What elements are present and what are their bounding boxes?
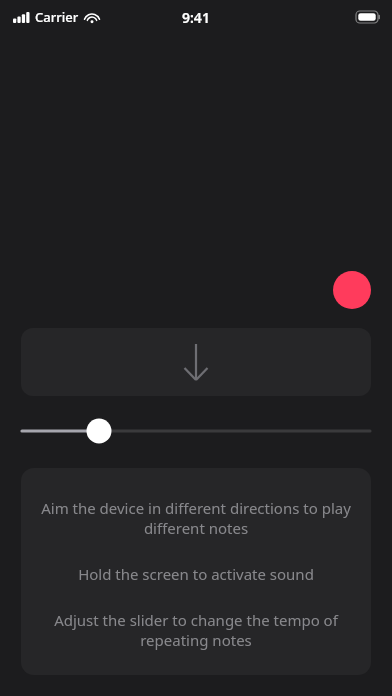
staticText: Hold the screen to activate sound bbox=[35, 564, 357, 584]
other: Current note indicator bbox=[333, 271, 371, 309]
button[interactable]: Tempo slider bbox=[0, 411, 392, 451]
staticText: Aim the device in different directions t… bbox=[35, 498, 357, 538]
button[interactable]: Pointing direction: down bbox=[21, 328, 371, 396]
staticText: Adjust the slider to change the tempo of… bbox=[35, 610, 357, 650]
staticText: 9:41 bbox=[182, 8, 210, 27]
staticText: Carrier bbox=[35, 8, 79, 26]
button[interactable]: Aim the device in different directions t… bbox=[21, 468, 371, 675]
